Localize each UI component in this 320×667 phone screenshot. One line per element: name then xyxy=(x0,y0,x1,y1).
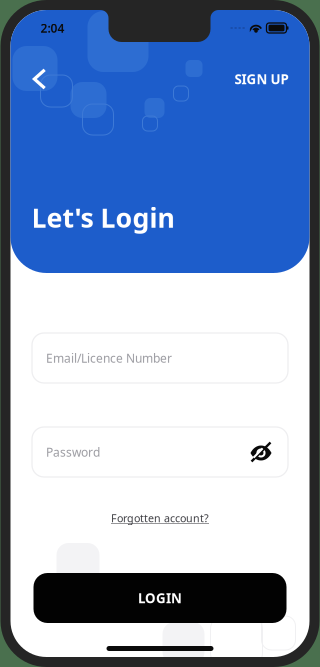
button[interactable]: Forgotten account? xyxy=(105,508,215,528)
staticText: Email/Licence Number xyxy=(46,350,172,366)
button[interactable]: Back xyxy=(27,56,51,102)
button[interactable]: LOGIN xyxy=(33,573,286,623)
staticText: 2:04 xyxy=(40,20,64,36)
staticText: LOGIN xyxy=(138,589,182,607)
staticText: Let's Login xyxy=(31,200,174,235)
button[interactable]: SIGN UP xyxy=(234,56,288,102)
staticText: SIGN UP xyxy=(234,70,288,88)
staticText: Password xyxy=(46,444,100,460)
staticText: Forgotten account? xyxy=(111,511,209,525)
